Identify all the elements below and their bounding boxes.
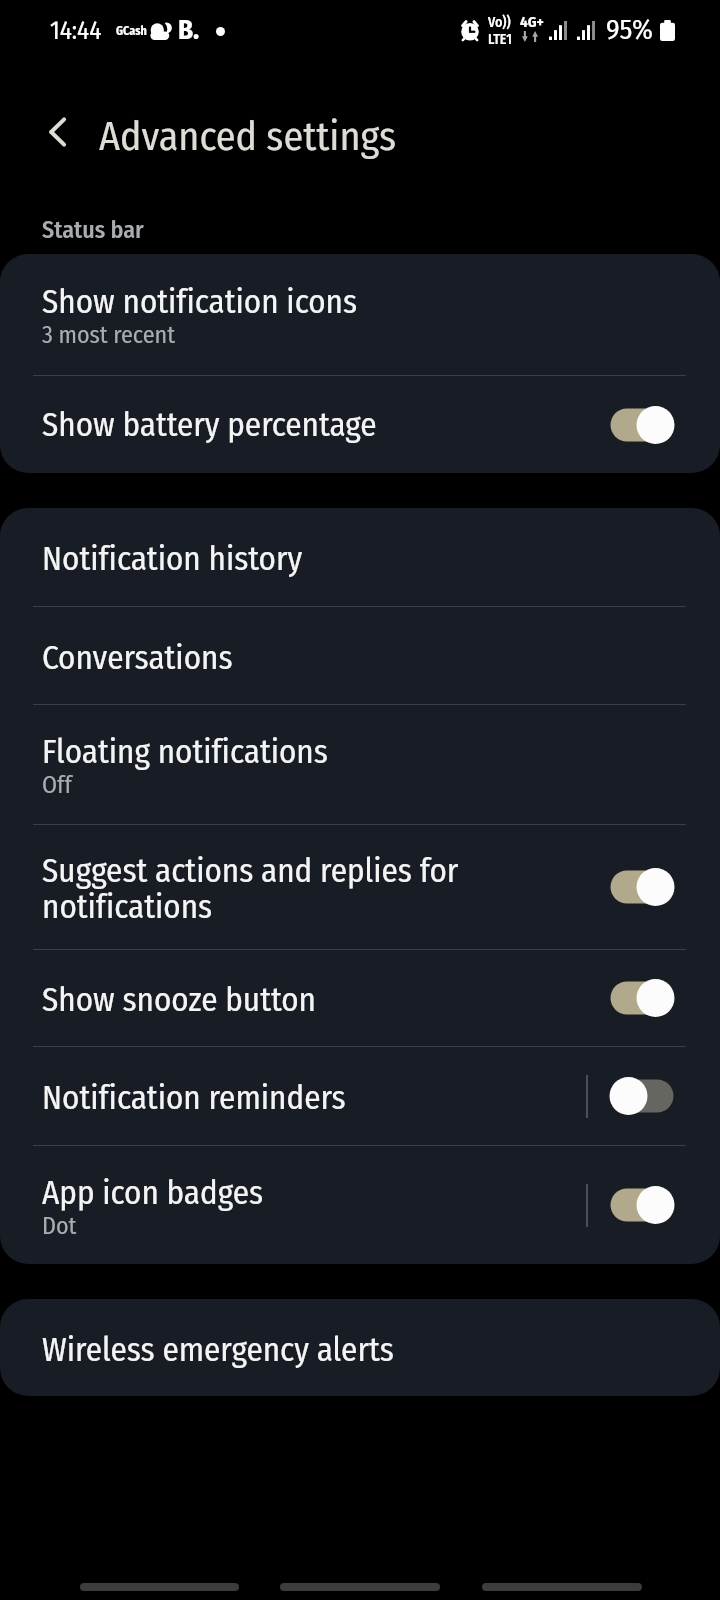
staticText: Status bar [42, 216, 144, 245]
staticText: GCash [116, 24, 147, 38]
button[interactable]: App icon badges [0, 1146, 720, 1264]
button[interactable]: Back [482, 1574, 642, 1600]
staticText: Show snooze button [42, 980, 316, 1020]
button[interactable]: Home [280, 1574, 440, 1600]
staticText: LTE1 [488, 31, 512, 48]
button[interactable]: Recents [79, 1574, 239, 1600]
staticText: Dot [42, 1212, 77, 1241]
staticText: 95% [606, 13, 653, 47]
staticText: Show battery percentage [42, 405, 377, 445]
button[interactable]: Turn off [610, 1185, 674, 1225]
staticText: 3 most recent [42, 321, 176, 350]
staticText: Advanced settings [99, 113, 397, 161]
button[interactable]: Turn off [610, 978, 674, 1018]
staticText: Wireless emergency alerts [42, 1330, 394, 1370]
staticText: Off [42, 771, 72, 800]
staticText: B. [178, 14, 200, 46]
staticText: 14:44 [50, 16, 102, 46]
button[interactable]: Notification history [0, 508, 720, 606]
button[interactable]: Wireless emergency alerts [0, 1299, 720, 1396]
button[interactable]: Show battery percentage [0, 376, 720, 473]
button[interactable]: Turn off [610, 867, 674, 907]
staticText: Show notification icons [42, 282, 357, 322]
button[interactable]: Back [32, 106, 84, 158]
staticText: Floating notifications [42, 732, 328, 772]
button[interactable]: Show notification icons [0, 254, 720, 375]
staticText: Notification reminders [42, 1078, 346, 1118]
staticText: 4G+ [520, 13, 544, 31]
staticText: App icon badges [42, 1173, 264, 1213]
button[interactable]: Conversations [0, 607, 720, 704]
staticText: Notification history [42, 539, 303, 579]
button[interactable]: Turn on [610, 1076, 674, 1116]
button[interactable]: Show snooze button [0, 950, 720, 1046]
staticText: Conversations [42, 638, 233, 678]
button[interactable]: Floating notifications [0, 705, 720, 824]
button[interactable]: Suggest actions and replies for notifica… [0, 825, 720, 949]
button[interactable]: Turn off [610, 405, 674, 445]
staticText: Vo)) [488, 14, 511, 31]
button[interactable]: Notification reminders [0, 1047, 720, 1145]
staticText: Suggest actions and replies for notifica… [42, 851, 586, 927]
